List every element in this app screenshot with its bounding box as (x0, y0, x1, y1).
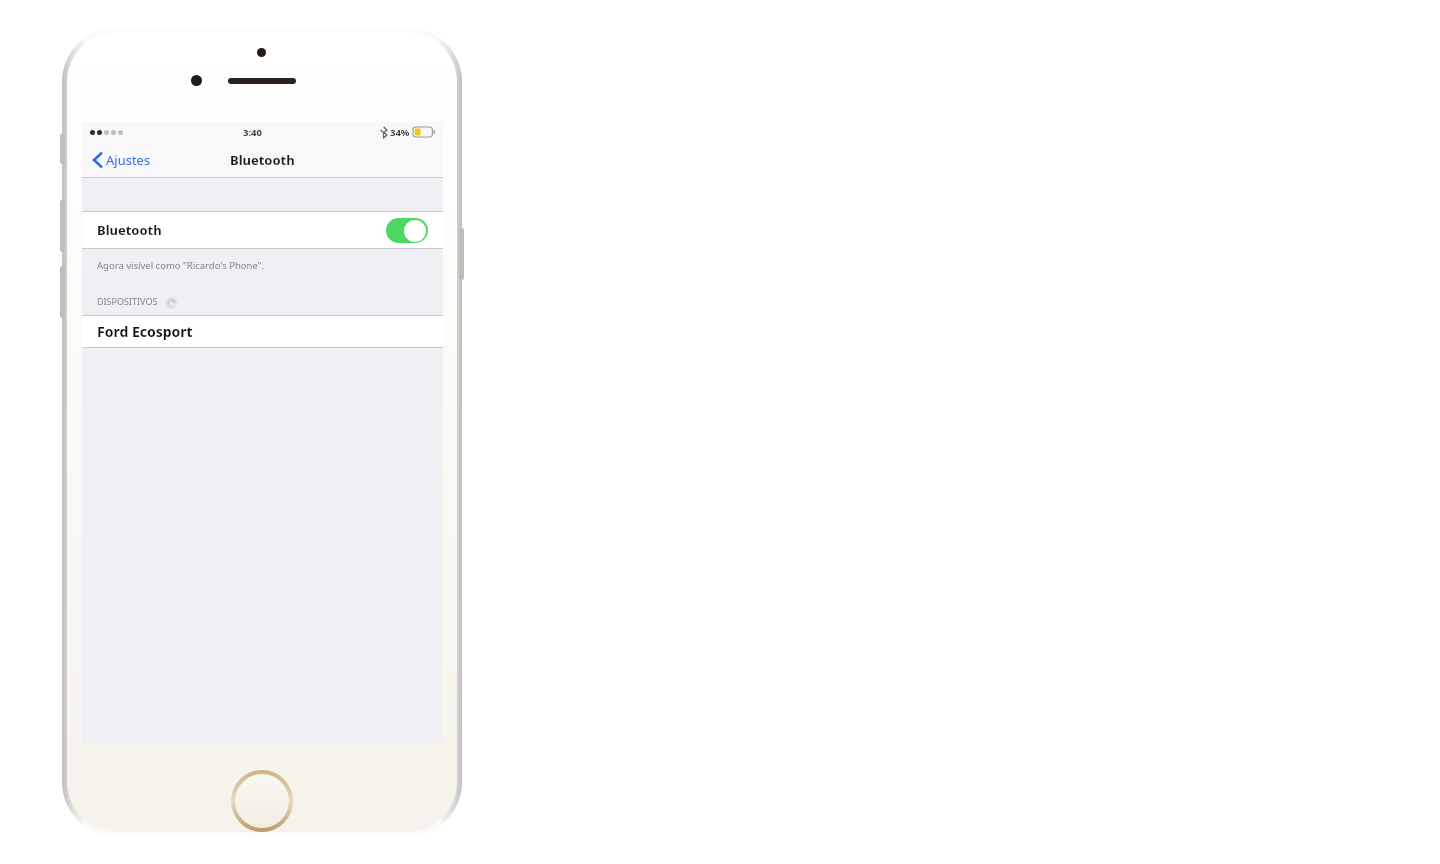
staticText: 34% (390, 126, 410, 139)
staticText: Ford Ecosport (97, 322, 193, 341)
staticText: 3:40 (243, 126, 262, 139)
button[interactable]: Ajustes (82, 147, 161, 173)
staticText: Bluetooth (97, 221, 162, 239)
staticText: DISPOSITIVOS (97, 295, 158, 307)
button[interactable]: Bluetooth (82, 212, 443, 248)
staticText: Ajustes (106, 151, 151, 169)
staticText: Agora visível como "Ricardo's Phone". (97, 259, 265, 272)
button[interactable]: Bluetooth on (386, 218, 428, 243)
staticText: Bluetooth (230, 151, 295, 169)
button[interactable]: Ford Ecosport (82, 316, 443, 347)
